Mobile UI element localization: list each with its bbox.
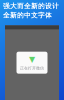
staticText: ▼ <box>29 55 35 64</box>
staticText: 全新的中文字体 <box>3 11 52 19</box>
staticText: 正在打开微信 <box>20 66 44 71</box>
staticText: 强大而全新的设计 <box>3 2 59 10</box>
